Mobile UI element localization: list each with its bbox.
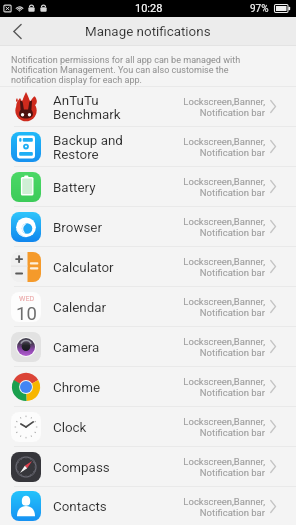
staticText: 10 [16,303,37,322]
staticText: Contacts [53,499,107,515]
staticText: Lockscreen,Banner, Notification bar [183,456,265,479]
staticText: Backup and Restore [53,133,123,162]
button[interactable]: Contacts [0,487,296,525]
button[interactable]: WED [0,287,296,326]
button[interactable]: Clock [0,407,296,446]
staticText: Lockscreen,Banner, Notification bar [183,96,265,119]
staticText: Lockscreen,Banner, Notification bar [183,376,265,399]
button[interactable]: Calculator [0,247,296,286]
staticText: Lockscreen,Banner, Notification bar [183,296,265,319]
staticText: Camera [53,340,100,356]
staticText: Notification permissions for all app can… [11,55,242,85]
staticText: Lockscreen,Banner, Notification bar [183,216,265,239]
staticText: Lockscreen,Banner, Notification bar [183,416,265,439]
button[interactable]: AnTuTu Benchmark [0,87,296,126]
staticText: Battery [53,180,96,196]
staticText: Lockscreen,Banner, Notification bar [183,136,265,159]
staticText: WED [19,294,35,302]
staticText: AnTuTu Benchmark [53,93,121,122]
staticText: Clock [53,420,87,436]
staticText: Browser [53,220,102,236]
staticText: 97% [250,3,269,15]
staticText: Lockscreen,Banner, Notification bar [183,496,265,519]
staticText: Compass [53,460,110,476]
button[interactable]: Browser [0,207,296,246]
button[interactable]: Battery [0,167,296,206]
staticText: Lockscreen,Banner, Notification bar [183,176,265,199]
staticText: Lockscreen,Banner, Notification bar [183,336,265,359]
staticText: Manage notifications [85,24,211,40]
button[interactable]: Chrome [0,367,296,406]
button[interactable]: Back [0,17,34,45]
button[interactable]: Backup and Restore [0,127,296,166]
staticText: Lockscreen,Banner, Notification bar [183,256,265,279]
staticText: Calculator [53,260,114,276]
button[interactable]: Compass [0,447,296,486]
button[interactable]: Camera [0,327,296,366]
staticText: 10:28 [135,2,163,15]
staticText: Calendar [53,300,107,316]
staticText: Chrome [53,380,100,396]
